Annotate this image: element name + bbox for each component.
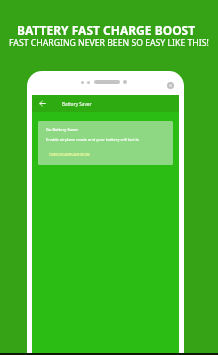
staticText: FAST CHARGING NEVER BEEN SO EASY LIKE TH…: [9, 37, 209, 49]
staticText: Go Battery Saver: [46, 127, 79, 132]
staticText: BATTERY FAST CHARGE BOOST: [17, 22, 196, 38]
button[interactable]: Back: [37, 98, 48, 109]
button[interactable]: TURN ON AIRPLANE MODE: [49, 153, 90, 157]
button[interactable]: Go Battery Saver: [38, 121, 173, 165]
staticText: Battery Saver: [62, 101, 92, 107]
staticText: Enable airplane mode and your battery wi…: [46, 137, 139, 142]
button[interactable]: Back: [32, 95, 179, 112]
